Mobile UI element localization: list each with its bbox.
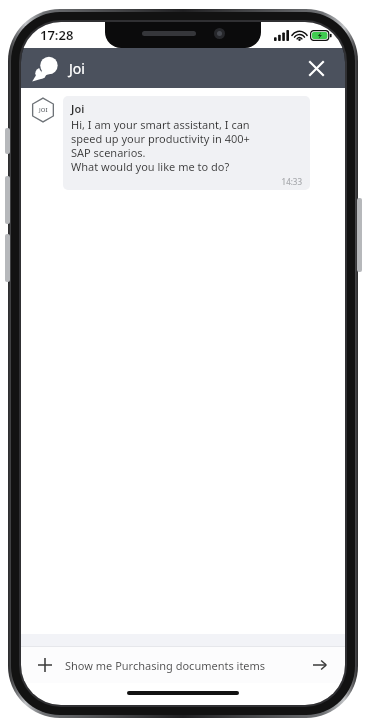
button[interactable]: Joi <box>63 96 310 190</box>
staticText: Show me Purchasing documents items <box>65 658 266 673</box>
staticText: Hi, I am your smart assistant, I can spe… <box>71 117 250 174</box>
button[interactable]: Add attachment <box>33 653 57 677</box>
button[interactable]: Close <box>298 50 334 86</box>
button[interactable]: Joi assistant <box>32 53 62 83</box>
staticText: 14:33 <box>71 176 302 187</box>
button[interactable]: Send <box>307 652 333 678</box>
staticText: Joi <box>71 101 85 116</box>
button[interactable]: Add attachment <box>21 647 345 683</box>
staticText: JOI <box>39 106 48 114</box>
staticText: 17:28 <box>40 26 74 44</box>
staticText: Joi <box>69 59 85 78</box>
